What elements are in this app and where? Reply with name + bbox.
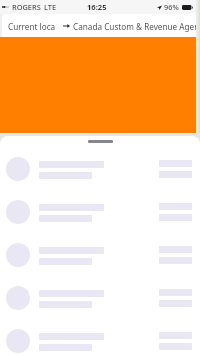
staticText: LTE	[44, 2, 57, 12]
staticText: 96%	[164, 2, 179, 12]
other: Location services active	[157, 5, 162, 10]
button[interactable]	[0, 275, 200, 318]
button[interactable]	[0, 318, 200, 356]
button[interactable]	[0, 232, 200, 275]
staticText: 16:25	[87, 2, 107, 12]
button[interactable]	[0, 189, 200, 232]
button[interactable]: Current location	[2, 14, 197, 37]
staticText: Canada Custom & Revenue Agency	[73, 21, 196, 32]
button[interactable]	[0, 146, 200, 189]
other: Battery 96 percent	[182, 5, 193, 10]
staticText: ROGERS	[12, 2, 41, 12]
staticText: Current location	[8, 21, 55, 32]
